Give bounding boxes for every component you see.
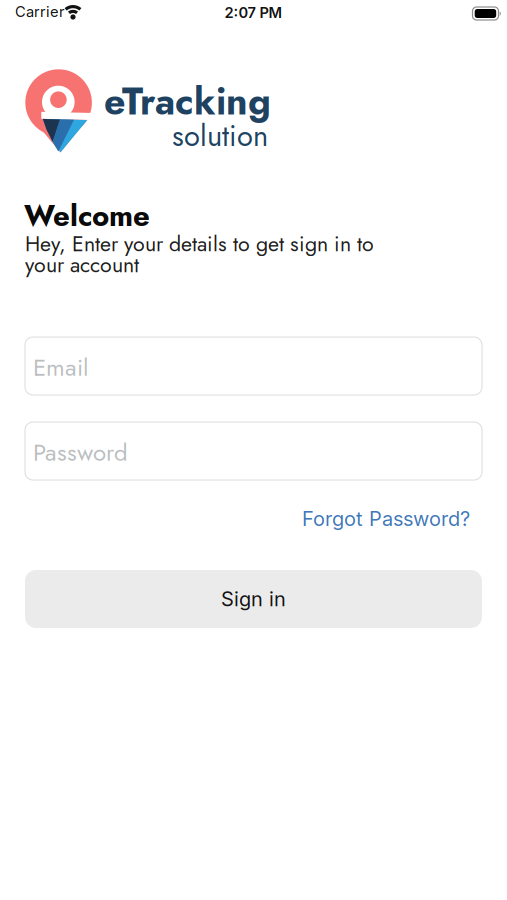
staticText: Welcome	[24, 194, 150, 237]
button[interactable]: Password	[25, 422, 482, 480]
staticText: Email	[33, 350, 89, 385]
staticText: eTracking	[104, 74, 271, 129]
staticText: solution	[172, 115, 268, 157]
staticText: Sign in	[221, 587, 286, 611]
button[interactable]: Email	[25, 337, 482, 395]
staticText: Forgot Password?	[302, 507, 470, 531]
staticText: Carrier	[15, 3, 65, 20]
staticText: 2:07 PM	[224, 4, 282, 21]
staticText: Password	[33, 435, 128, 470]
button[interactable]: Forgot Password?	[302, 507, 470, 531]
button[interactable]: Sign in	[25, 570, 482, 628]
staticText: your account	[25, 249, 139, 280]
staticText: Hey, Enter your details to get sign in t…	[25, 228, 374, 259]
